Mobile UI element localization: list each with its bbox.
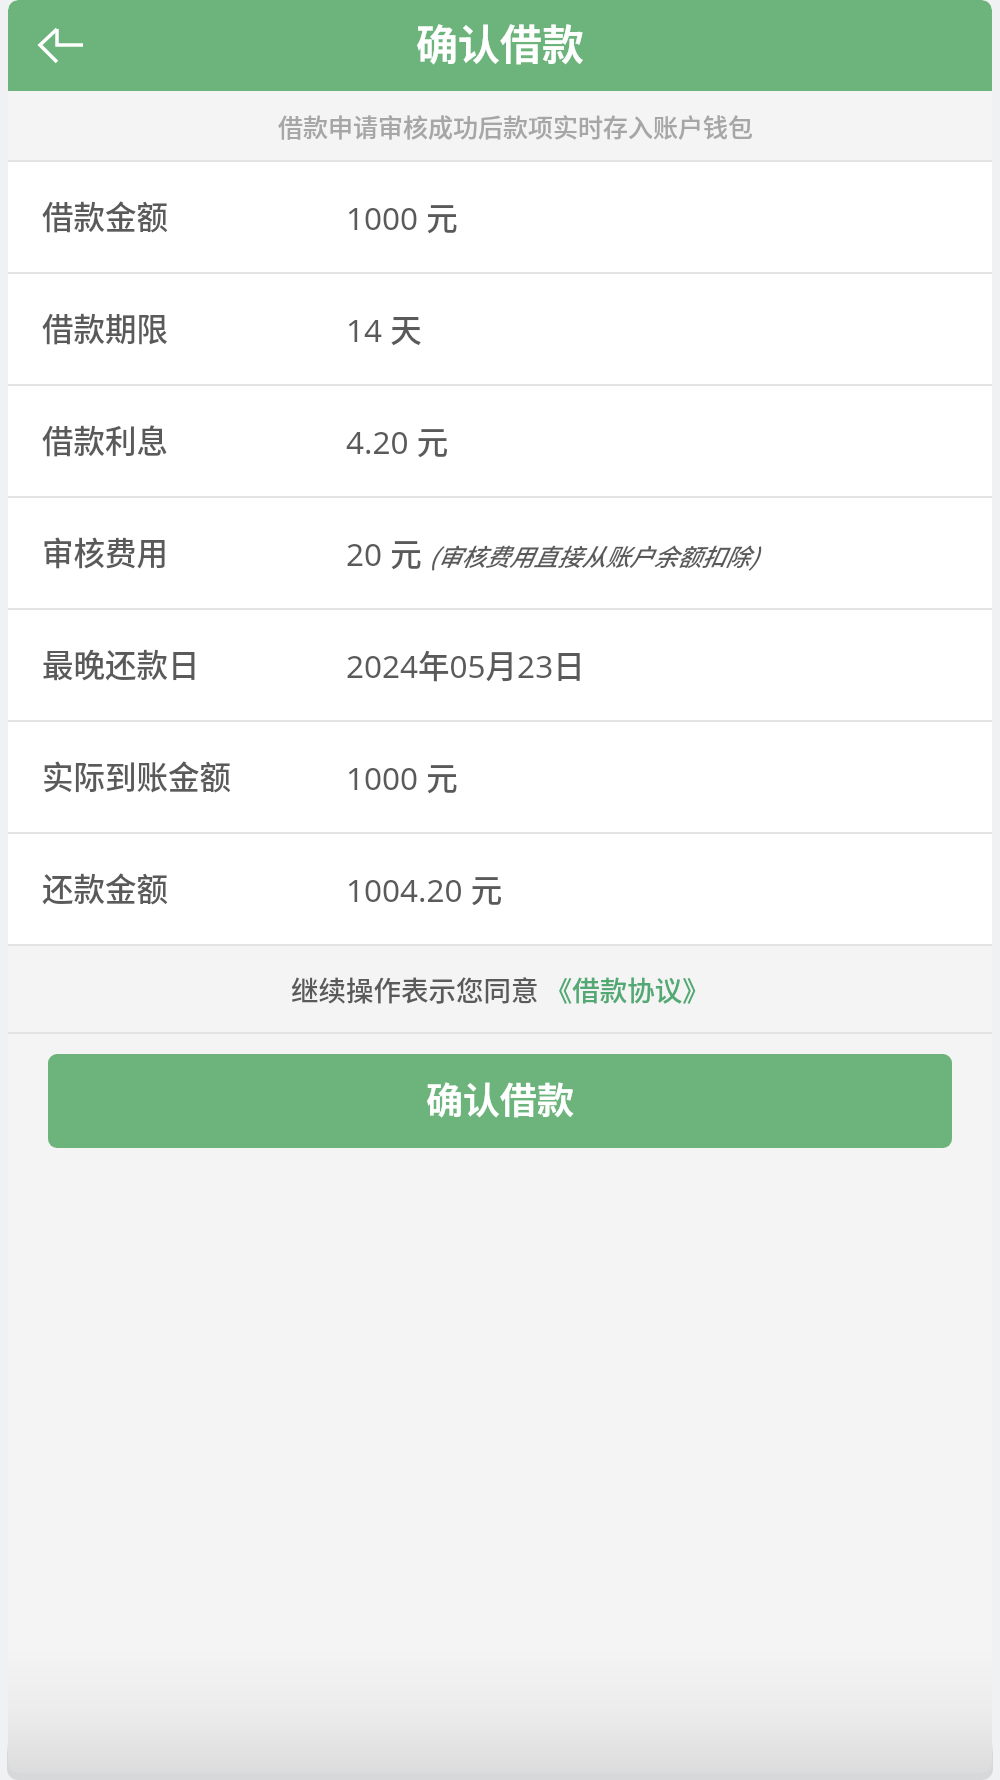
staticText: 4.20 元 — [346, 417, 449, 463]
staticText: 审核费用 — [42, 528, 169, 574]
button[interactable]: 实际到账金额 — [8, 722, 992, 832]
button[interactable]: 借款期限 — [8, 274, 992, 384]
button[interactable]: 借款利息 — [8, 386, 992, 496]
staticText: 借款申请审核成功后款项实时存入账户钱包 — [278, 108, 754, 144]
staticText: 借款金额 — [42, 192, 169, 238]
button[interactable]: 继续操作表示您同意 《借款协议》 — [291, 969, 710, 1009]
staticText: 确认借款 — [426, 1071, 574, 1125]
button[interactable]: 最晚还款日 — [8, 610, 992, 720]
staticText: 1000 元 — [346, 753, 458, 799]
button[interactable]: 确认借款 — [48, 1054, 952, 1148]
button[interactable]: 还款金额 — [8, 834, 992, 944]
staticText: 1004.20 元 — [346, 865, 503, 911]
button[interactable]: 借款金额 — [8, 162, 992, 272]
staticText: 最晚还款日 — [42, 640, 200, 686]
staticText: 20 元 (审核费用直接从账户余额扣除) — [346, 529, 758, 575]
staticText: 确认借款 — [416, 11, 585, 72]
staticText: 14 天 — [346, 305, 422, 351]
button[interactable]: 审核费用 — [8, 498, 992, 608]
staticText: 1000 元 — [346, 193, 458, 239]
staticText: 还款金额 — [42, 864, 169, 910]
staticText: 借款期限 — [42, 304, 169, 350]
button[interactable]: Back — [8, 0, 118, 91]
staticText: 借款利息 — [42, 416, 169, 462]
staticText: 2024年05月23日 — [346, 641, 585, 687]
staticText: 实际到账金额 — [42, 752, 232, 798]
